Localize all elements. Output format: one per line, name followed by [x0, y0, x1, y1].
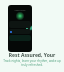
staticText: Track nights, learn your rhythm, wake up…	[1, 59, 63, 66]
button[interactable]	[9, 35, 31, 41]
staticText: Sleep Score	[8, 9, 32, 12]
button[interactable]	[9, 21, 31, 28]
staticText: Rest Assured, Your	[1, 52, 63, 59]
button[interactable]	[9, 29, 31, 34]
